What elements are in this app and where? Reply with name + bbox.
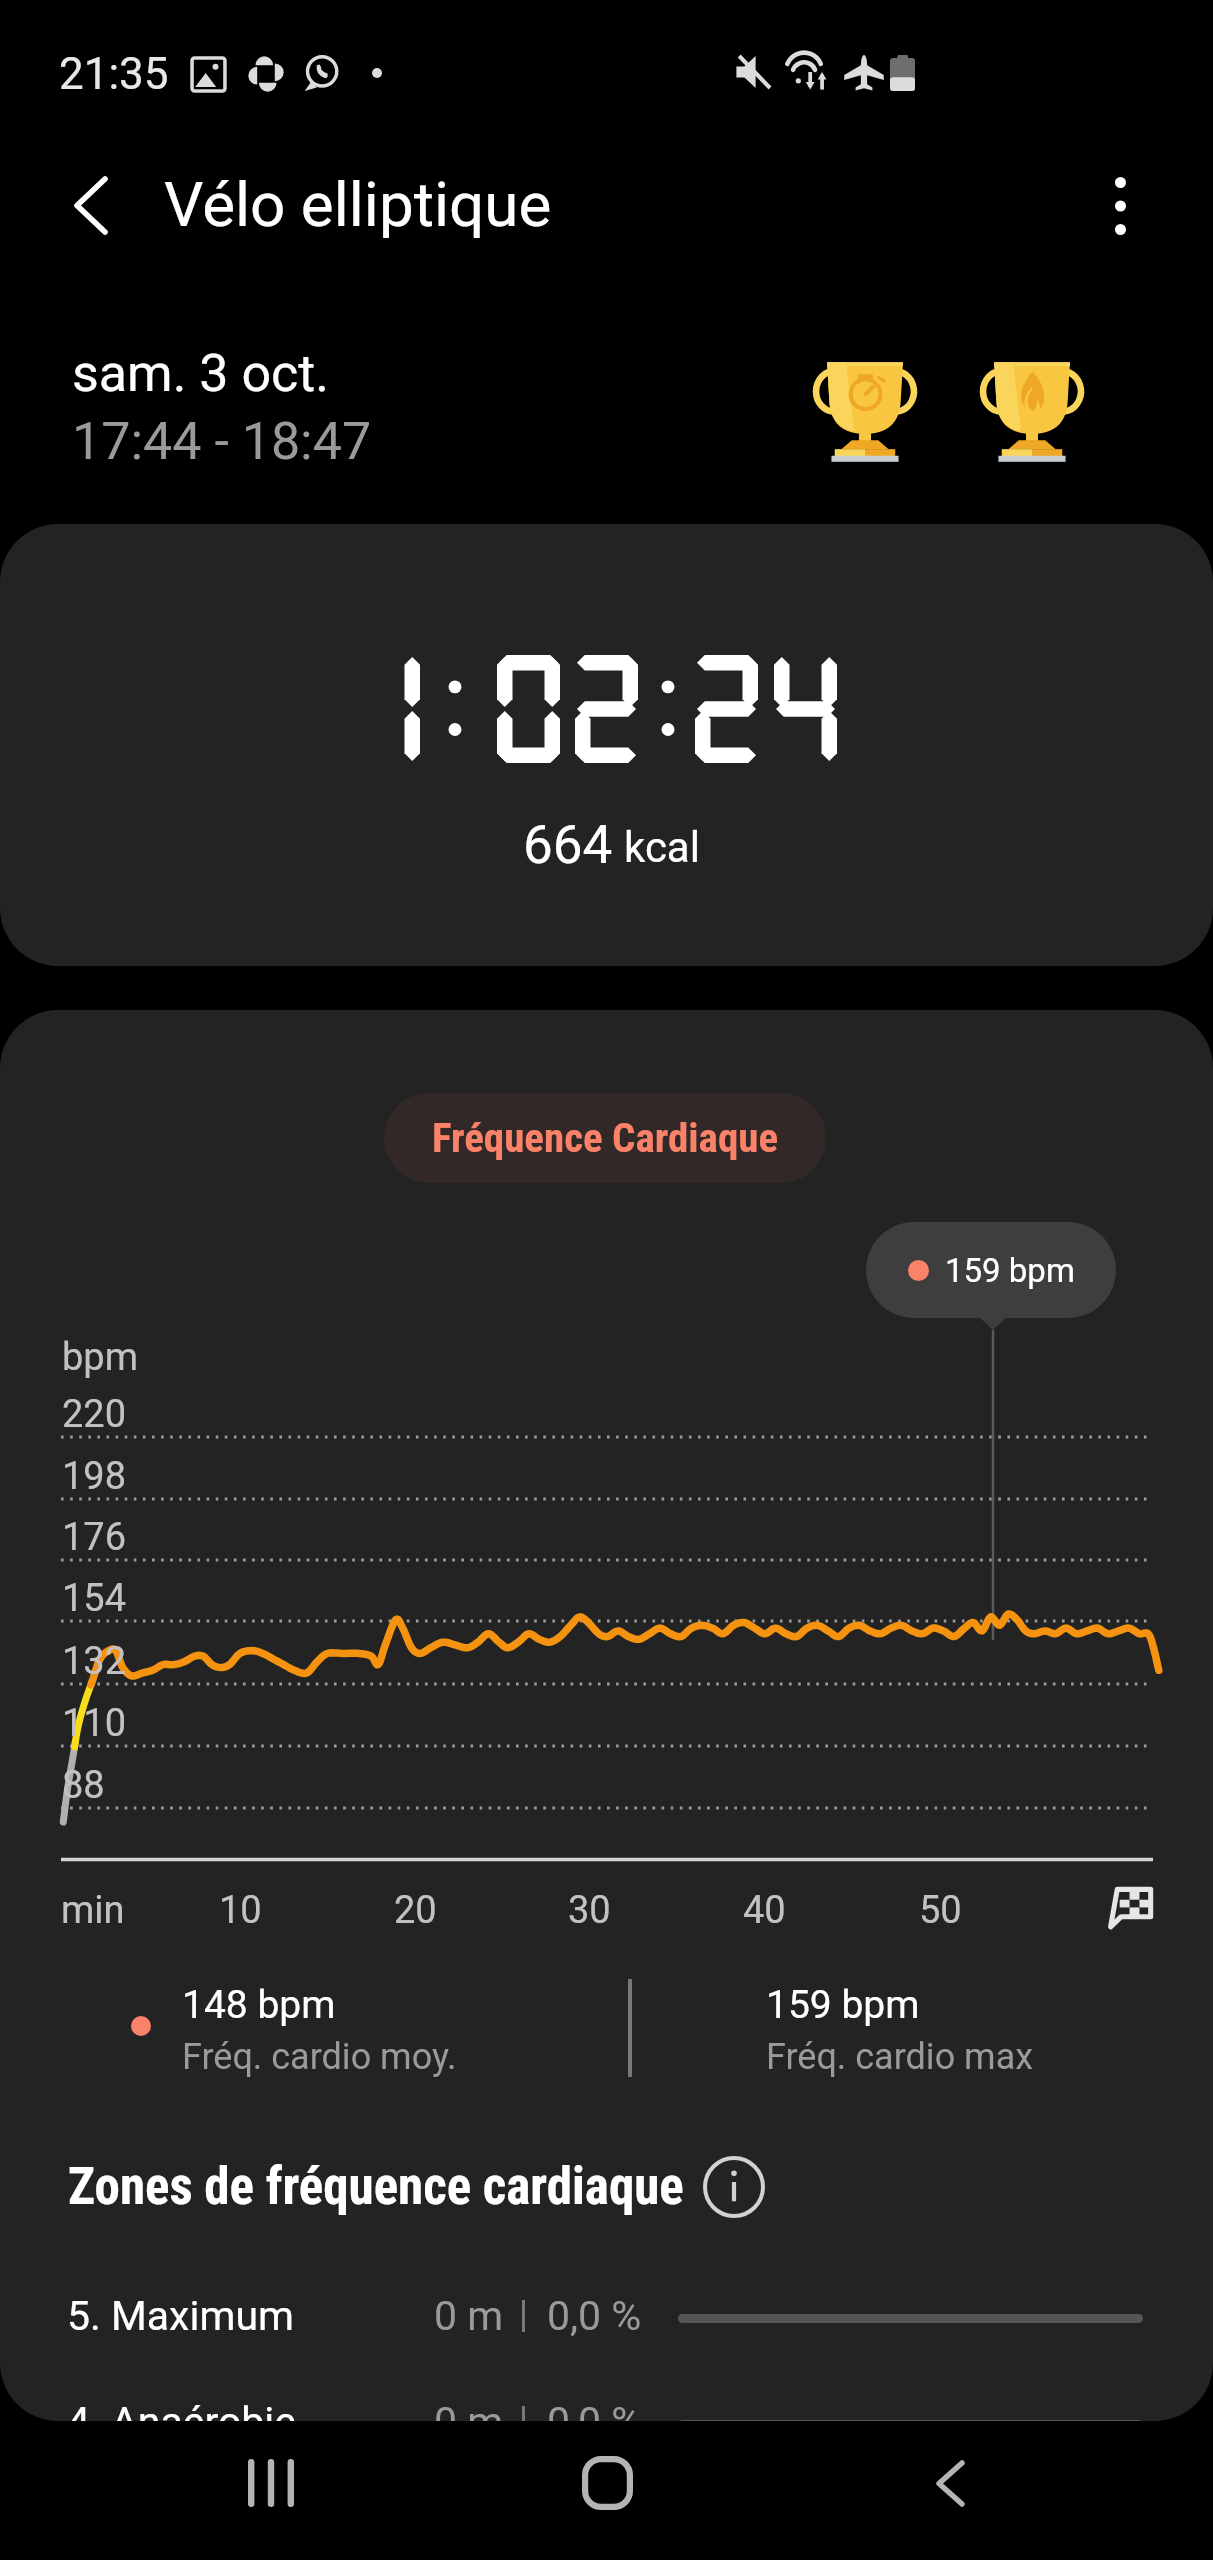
- button[interactable]: 664: [0, 524, 1213, 966]
- staticText: 148 bpm: [182, 1982, 336, 2028]
- staticText: min: [61, 1888, 125, 1933]
- staticText: bpm: [62, 1335, 138, 1380]
- staticText: 664: [523, 814, 613, 876]
- staticText: 21:35: [59, 48, 169, 100]
- button[interactable]: More options: [1083, 169, 1157, 243]
- staticText: 0 m: [434, 2292, 504, 2340]
- staticText: 159 bpm: [766, 1982, 920, 2028]
- staticText: 5. Maximum: [67, 2292, 294, 2340]
- staticText: 110: [62, 1701, 127, 1746]
- button[interactable]: Back: [53, 167, 129, 243]
- button[interactable]: Fréquence Cardiaque: [384, 1093, 826, 1183]
- button[interactable]: 4. Anaérobie: [0, 2398, 1213, 2421]
- staticText: 4. Anaérobie: [67, 2398, 297, 2421]
- staticText: 20: [394, 1888, 437, 1933]
- staticText: 154: [62, 1576, 127, 1621]
- staticText: Zones de fréquence cardiaque: [68, 2157, 684, 2217]
- button[interactable]: Information: [700, 2153, 768, 2221]
- staticText: Vélo elliptique: [164, 168, 552, 241]
- staticText: 50: [919, 1888, 962, 1933]
- staticText: sam. 3 oct.: [72, 343, 330, 404]
- staticText: 159 bpm: [945, 1251, 1075, 1290]
- staticText: 0,0 %: [547, 2292, 642, 2340]
- staticText: 176: [62, 1515, 127, 1560]
- staticText: Fréq. cardio max: [766, 2036, 1034, 2078]
- staticText: 40: [743, 1888, 786, 1933]
- button[interactable]: 5. Maximum: [0, 2292, 1213, 2354]
- staticText: Fréq. cardio moy.: [182, 2036, 457, 2078]
- staticText: 17:44 - 18:47: [72, 411, 372, 472]
- staticText: 30: [568, 1888, 611, 1933]
- staticText: Fréquence Cardiaque: [432, 1114, 779, 1162]
- staticText: 198: [62, 1454, 127, 1499]
- staticText: 88: [62, 1763, 105, 1808]
- staticText: 0,0 %: [547, 2398, 642, 2421]
- staticText: 10: [219, 1888, 262, 1933]
- staticText: 132: [62, 1639, 127, 1684]
- button[interactable]: Back: [890, 2423, 1010, 2543]
- staticText: kcal: [624, 823, 700, 872]
- staticText: 0 m: [434, 2398, 504, 2421]
- button[interactable]: Recents: [211, 2423, 331, 2543]
- staticText: 220: [62, 1392, 127, 1437]
- button[interactable]: Home: [547, 2423, 667, 2543]
